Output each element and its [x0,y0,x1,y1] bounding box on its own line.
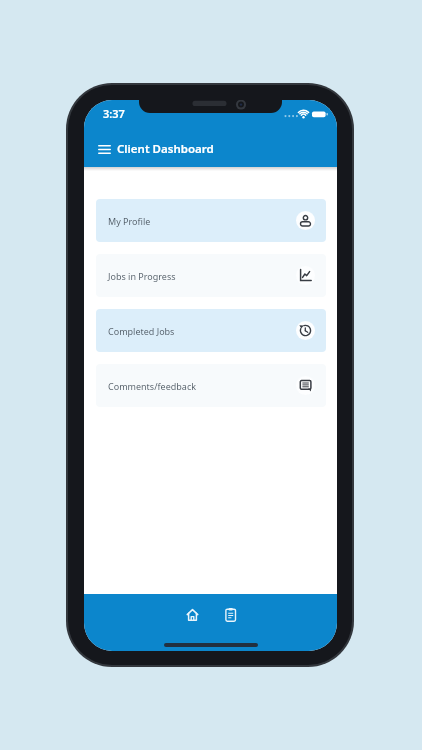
staticText: Completed Jobs [108,325,175,337]
button[interactable] [174,599,210,630]
staticText: Comments/feedback [108,380,197,392]
button[interactable]: Completed Jobs [96,309,326,352]
staticText: 3:37 [103,106,125,121]
staticText: My Profile [108,215,151,227]
staticText: Client Dashboard [117,141,214,157]
button[interactable]: Jobs in Progress [96,254,326,297]
button[interactable] [212,599,248,630]
button[interactable] [93,138,115,160]
button[interactable]: My Profile [96,199,326,242]
button[interactable]: Comments/feedback [96,364,326,407]
staticText: Jobs in Progress [108,270,176,282]
